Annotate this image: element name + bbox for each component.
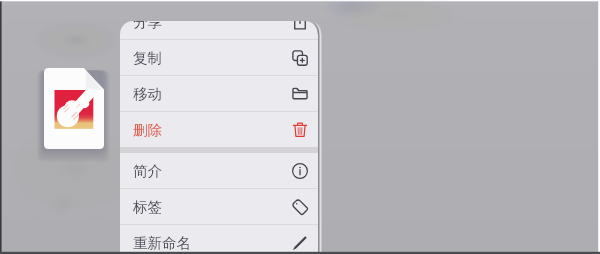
- button[interactable]: 移动: [120, 76, 318, 111]
- other: Tags: [292, 199, 308, 215]
- button[interactable]: 复制: [120, 40, 318, 75]
- button[interactable]: 重新命名: [120, 225, 318, 254]
- button[interactable]: 删除: [120, 112, 318, 147]
- staticText: 复制: [133, 49, 162, 67]
- staticText: 标签: [133, 198, 162, 216]
- staticText: 重新命名: [133, 234, 191, 252]
- other: Info: [292, 163, 308, 179]
- other: Share: [292, 21, 308, 30]
- staticText: 移动: [133, 85, 162, 103]
- staticText: 删除: [133, 121, 162, 139]
- button[interactable]: 简介: [120, 153, 318, 188]
- other: Copy: [292, 50, 308, 66]
- button[interactable]: 标签: [120, 189, 318, 224]
- other: Delete: [292, 122, 308, 138]
- staticText: 简介: [133, 162, 162, 180]
- staticText: 分享: [133, 21, 162, 31]
- other: Move: [292, 86, 308, 102]
- other: Rename: [292, 235, 308, 251]
- button[interactable]: 分享: [120, 21, 318, 39]
